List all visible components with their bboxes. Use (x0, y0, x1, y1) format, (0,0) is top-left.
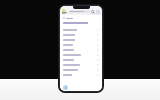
button[interactable] (63, 17, 73, 19)
button[interactable] (63, 42, 99, 47)
button[interactable] (63, 52, 99, 57)
button[interactable] (63, 72, 99, 77)
button[interactable]: Help (63, 85, 68, 90)
button[interactable]: Search (91, 10, 95, 14)
button[interactable] (63, 37, 99, 42)
button[interactable] (63, 57, 99, 62)
button[interactable] (63, 67, 99, 72)
button[interactable] (63, 27, 99, 32)
button[interactable] (63, 47, 99, 52)
button[interactable] (63, 32, 99, 37)
button[interactable] (63, 62, 99, 67)
button[interactable]: Home (62, 9, 67, 14)
button[interactable] (69, 10, 90, 13)
button[interactable] (63, 22, 88, 24)
